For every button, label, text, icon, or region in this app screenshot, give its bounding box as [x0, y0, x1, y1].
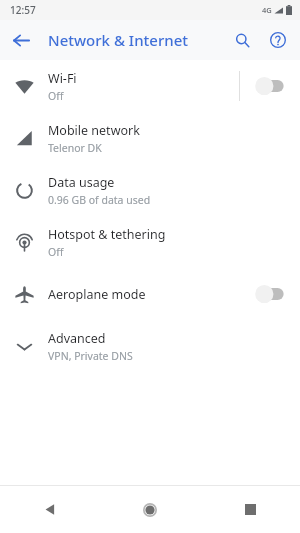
- staticText: 0.96 GB of data used: [48, 193, 151, 207]
- staticText: Hotspot & tethering: [48, 226, 166, 243]
- button[interactable]: Help: [262, 24, 294, 56]
- button[interactable]: Search: [226, 24, 258, 56]
- staticText: 12:57: [10, 3, 36, 17]
- button[interactable]: Aeroplane mode toggle: [254, 279, 292, 309]
- button[interactable]: Hotspot & tethering: [0, 216, 300, 268]
- button[interactable]: Home: [100, 486, 200, 533]
- button[interactable]: Mobile network: [0, 112, 300, 164]
- staticText: Wi-Fi: [48, 70, 77, 87]
- button[interactable]: Data usage: [0, 164, 300, 216]
- button[interactable]: Back: [0, 486, 100, 533]
- staticText: 4G: [262, 5, 272, 15]
- staticText: Data usage: [48, 174, 115, 191]
- staticText: Off: [48, 89, 64, 103]
- button[interactable]: Back: [4, 23, 38, 57]
- staticText: Advanced: [48, 330, 106, 347]
- button[interactable]: Wi-Fi toggle: [254, 71, 292, 101]
- staticText: VPN, Private DNS: [48, 349, 133, 363]
- staticText: Off: [48, 245, 64, 259]
- button[interactable]: Aeroplane mode: [0, 268, 300, 320]
- staticText: Network & Internet: [48, 30, 189, 50]
- button[interactable]: Advanced: [0, 320, 300, 372]
- button[interactable]: Recent apps: [200, 486, 300, 533]
- staticText: Aeroplane mode: [48, 286, 146, 303]
- staticText: Mobile network: [48, 122, 140, 139]
- button[interactable]: Wi-Fi: [0, 60, 300, 112]
- staticText: Telenor DK: [48, 141, 102, 155]
